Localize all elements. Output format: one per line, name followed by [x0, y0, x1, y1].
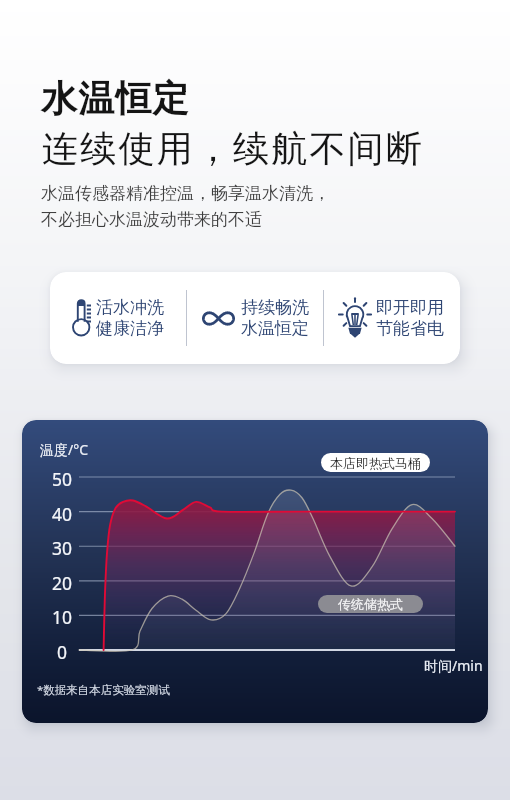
staticText: 水温恒定	[41, 76, 190, 121]
staticText: 持续畅洗	[241, 297, 309, 318]
staticText: *数据来自本店实验室测试	[37, 682, 170, 698]
other: 即开即用	[340, 300, 370, 336]
staticText: 即开即用	[376, 297, 444, 318]
staticText: 温度/°C	[40, 440, 89, 459]
button[interactable]: 本店即热式马桶	[321, 453, 430, 472]
other: 持续畅洗	[202, 309, 235, 328]
button[interactable]: 传统储热式	[318, 595, 423, 613]
staticText: 水温传感器精准控温，畅享温水清洗， 不必担心水温波动带来的不适	[41, 183, 330, 230]
staticText: 水温恒定	[241, 318, 309, 339]
staticText: 10	[52, 605, 73, 629]
staticText: 时间/min	[424, 656, 483, 675]
other: 活水冲洗	[72, 299, 92, 337]
staticText: 传统储热式	[338, 596, 403, 612]
staticText: 节能省电	[376, 318, 444, 339]
staticText: 健康洁净	[96, 318, 164, 339]
button[interactable]: 持续畅洗	[187, 272, 323, 364]
staticText: 30	[52, 536, 73, 560]
staticText: 本店即热式马桶	[330, 455, 421, 471]
staticText: 活水冲洗	[96, 297, 164, 318]
staticText: 40	[52, 502, 73, 526]
staticText: 20	[52, 571, 73, 595]
staticText: 50	[52, 467, 73, 491]
staticText: 连续使用，续航不间断	[41, 126, 423, 171]
button[interactable]: 活水冲洗	[50, 272, 460, 364]
button[interactable]: 活水冲洗	[50, 272, 186, 364]
button[interactable]: 即开即用	[324, 272, 460, 364]
staticText: 0	[57, 640, 68, 664]
